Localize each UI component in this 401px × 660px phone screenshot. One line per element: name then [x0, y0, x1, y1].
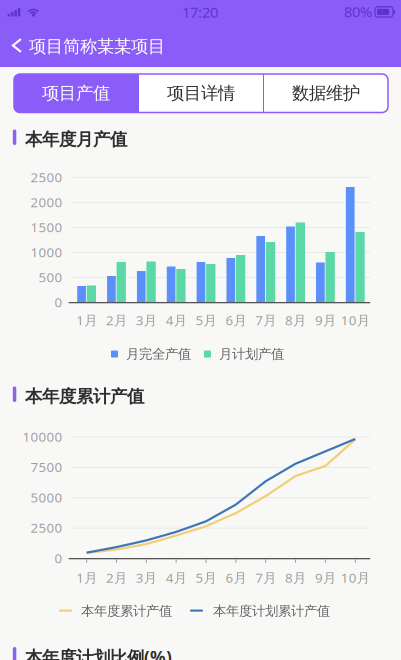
staticText: 本年度计划累计产值 [213, 603, 330, 619]
staticText: 0 [54, 293, 62, 311]
staticText: 10月 [341, 569, 370, 586]
button[interactable]: 项目产值 [14, 74, 138, 112]
staticText: 5月 [195, 311, 216, 329]
staticText: 3月 [136, 569, 157, 586]
staticText: 7月 [255, 569, 276, 586]
staticText: 2月 [106, 311, 127, 329]
staticText: 本年度累计产值 [81, 603, 172, 619]
staticText: 8月 [285, 569, 306, 586]
staticText: 1月 [76, 311, 97, 329]
staticText: 0 [54, 549, 62, 567]
staticText: 2500 [30, 168, 62, 186]
staticText: 本年度计划比例(%) [25, 645, 172, 660]
staticText: 8月 [285, 311, 306, 329]
staticText: 17:20 [182, 2, 218, 22]
button[interactable]: 项目详情 [139, 74, 263, 112]
staticText: 数据维护 [292, 83, 360, 104]
staticText: 10000 [22, 428, 62, 445]
staticText: 1500 [30, 218, 62, 236]
staticText: 项目简称某某项目 [29, 36, 165, 57]
staticText: 3月 [136, 311, 157, 329]
staticText: 项目详情 [167, 83, 235, 104]
staticText: 4月 [166, 311, 187, 329]
staticText: 本年度月产值 [25, 129, 127, 150]
staticText: 1000 [30, 243, 62, 261]
staticText: 500 [38, 268, 62, 286]
staticText: 2000 [30, 193, 62, 211]
staticText: 月完全产值 [126, 346, 191, 362]
staticText: 1月 [76, 569, 97, 586]
staticText: 4月 [166, 569, 187, 586]
staticText: 月计划产值 [219, 346, 284, 362]
staticText: 6月 [225, 569, 246, 586]
staticText: 2月 [106, 569, 127, 586]
staticText: 9月 [315, 311, 336, 329]
staticText: 本年度累计产值 [25, 386, 144, 407]
staticText: 10月 [341, 311, 370, 329]
staticText: 9月 [315, 569, 336, 586]
staticText: 7月 [255, 311, 276, 329]
staticText: 80% [344, 2, 372, 21]
staticText: 6月 [225, 311, 246, 329]
staticText: 5月 [195, 569, 216, 586]
staticText: 5000 [30, 488, 62, 506]
staticText: 2500 [30, 519, 62, 536]
button[interactable]: 数据维护 [264, 74, 388, 112]
button[interactable]: Back [4, 32, 30, 59]
staticText: 7500 [30, 458, 62, 476]
staticText: 项目产值 [42, 83, 110, 104]
